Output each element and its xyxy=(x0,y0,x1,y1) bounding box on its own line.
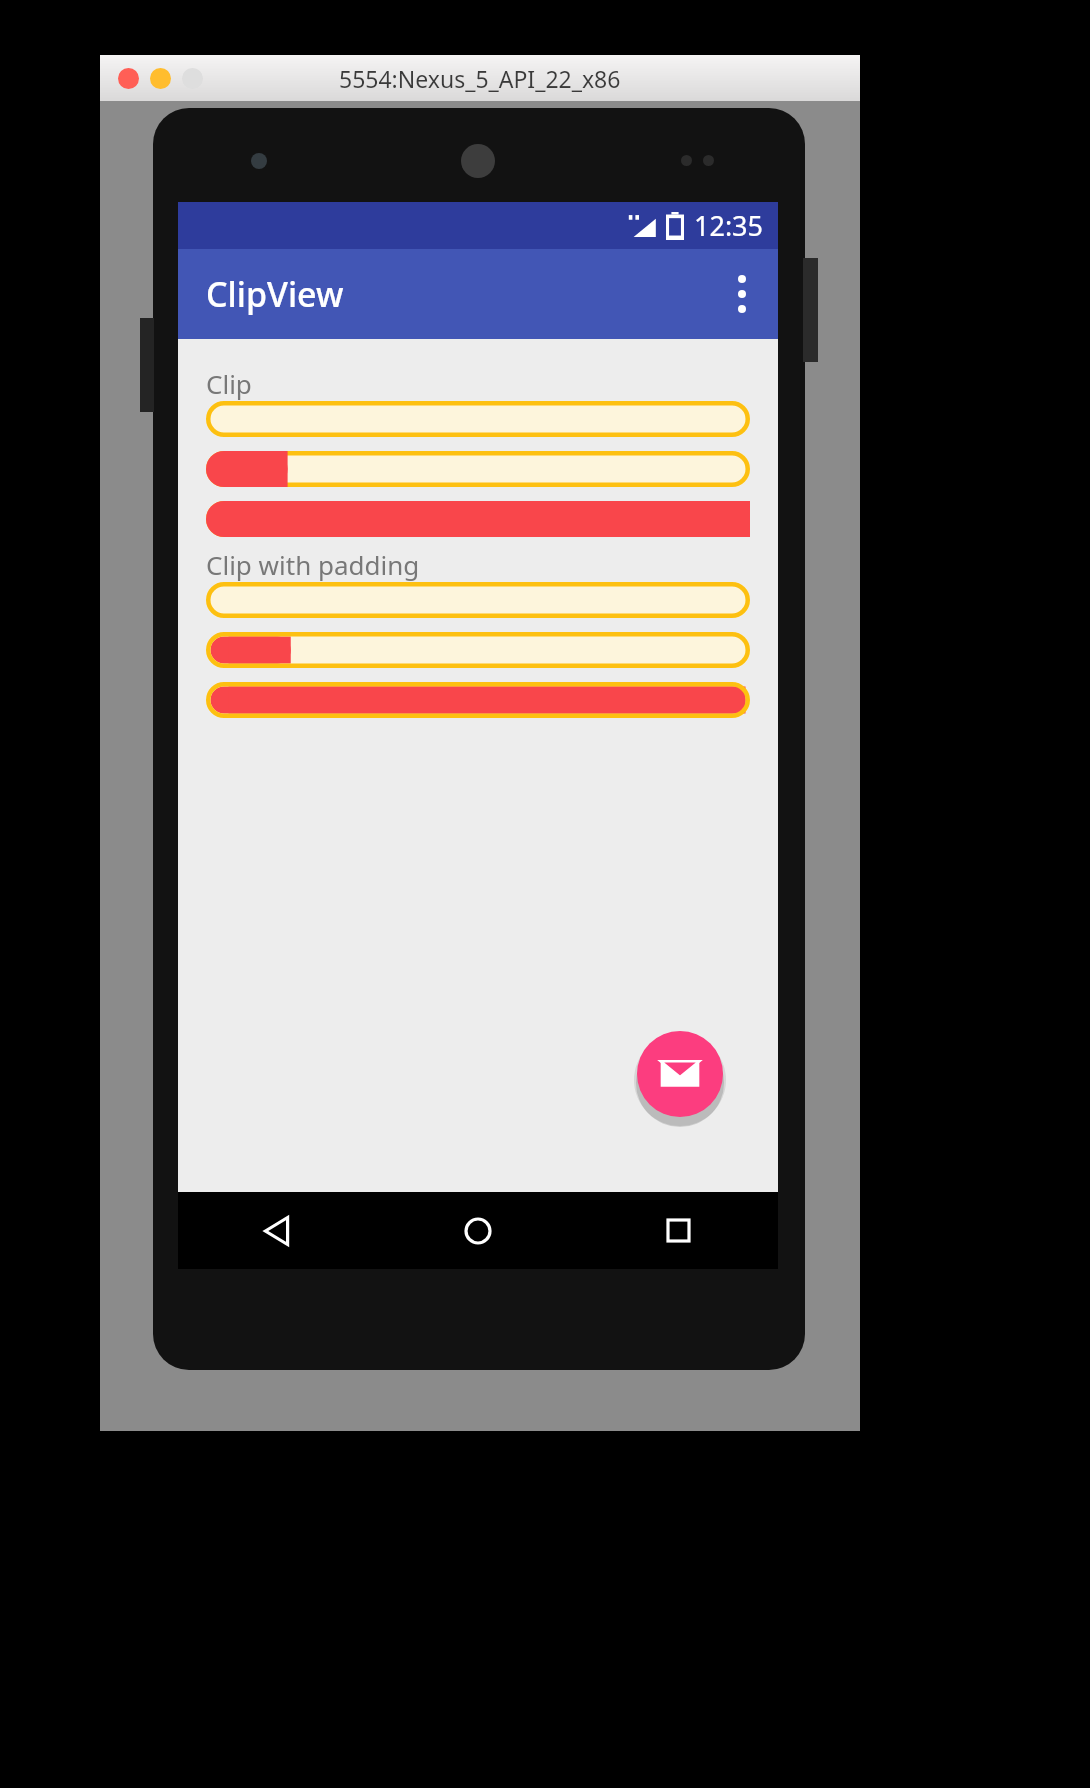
button[interactable]: Recent apps xyxy=(578,1192,778,1269)
staticText: 12:35 xyxy=(694,207,764,244)
staticText: ClipView xyxy=(206,271,344,317)
button[interactable]: Zoom window xyxy=(182,68,203,89)
button[interactable]: Close window xyxy=(118,68,139,89)
button[interactable]: Compose message xyxy=(634,1028,726,1120)
button[interactable]: More options xyxy=(706,258,778,330)
button[interactable]: Minimize window xyxy=(150,68,171,89)
staticText: 5554:Nexus_5_API_22_x86 xyxy=(339,63,621,94)
button[interactable]: Home xyxy=(378,1192,578,1269)
staticText: Clip with padding xyxy=(206,547,420,582)
staticText: Clip xyxy=(206,366,252,401)
button[interactable]: Back xyxy=(178,1192,378,1269)
